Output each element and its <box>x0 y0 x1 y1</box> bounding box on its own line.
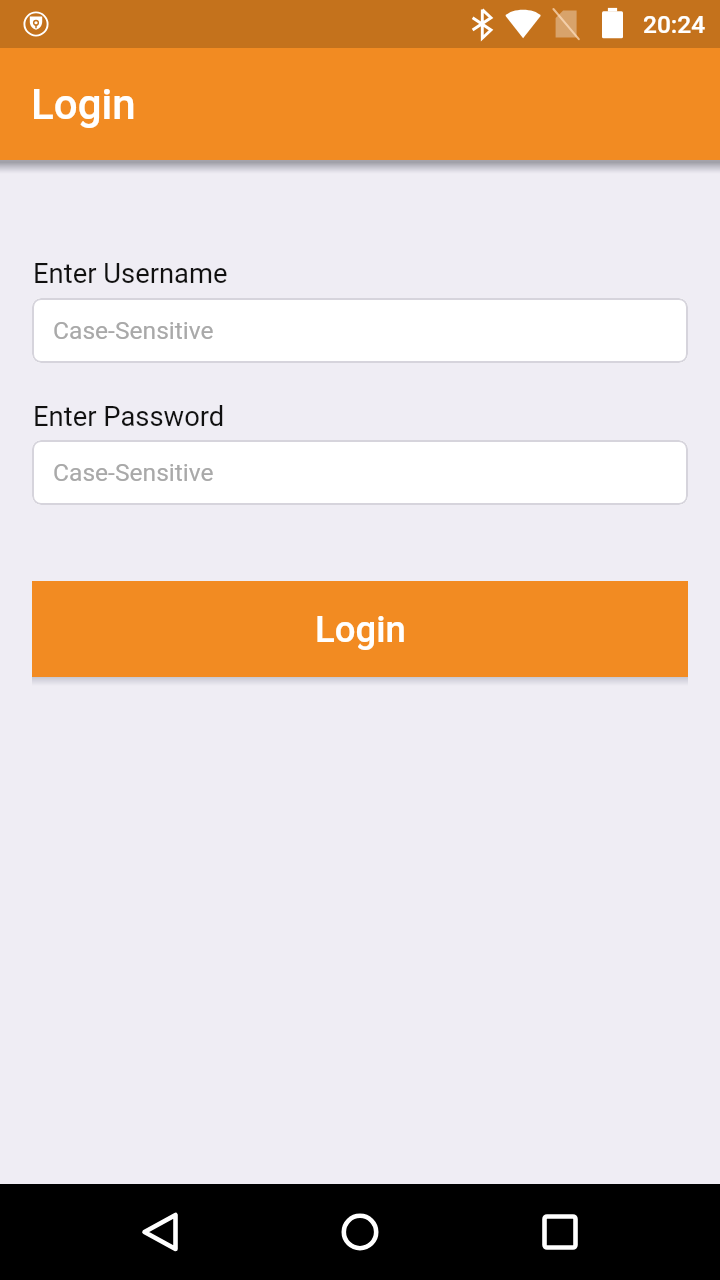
staticText: Enter Username <box>33 258 228 290</box>
staticText: 20:24 <box>643 10 706 39</box>
other: Status bar <box>0 0 720 48</box>
staticText: Case-Sensitive <box>53 458 214 487</box>
button[interactable]: Recent apps <box>512 1184 608 1280</box>
button[interactable]: Enter Password <box>32 440 688 505</box>
button[interactable]: Login <box>32 581 688 677</box>
button[interactable]: Home <box>312 1184 408 1280</box>
button[interactable]: Back <box>112 1184 208 1280</box>
staticText: Enter Password <box>33 401 225 433</box>
staticText: Login <box>315 608 406 651</box>
staticText: Login <box>31 80 136 129</box>
button[interactable]: Enter Username <box>32 298 688 363</box>
staticText: Case-Sensitive <box>53 316 214 345</box>
